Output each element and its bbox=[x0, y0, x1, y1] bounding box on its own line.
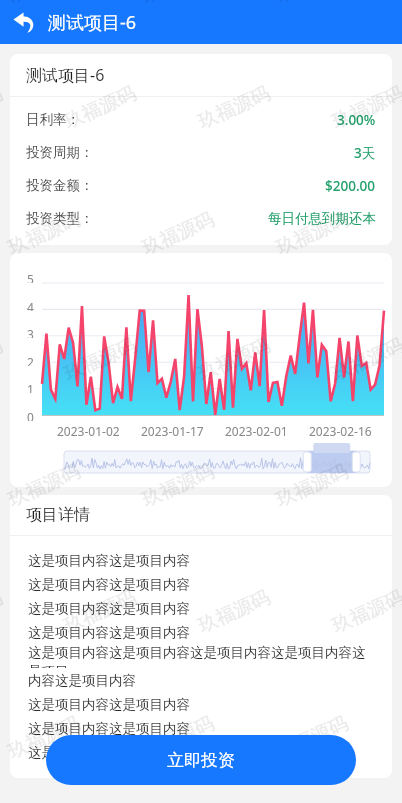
staticText: 测试项目-6 bbox=[48, 10, 137, 35]
staticText: 玖福源码 bbox=[328, 82, 402, 134]
staticText: 玖福源码 bbox=[328, 334, 402, 386]
staticText: 玖福源码 bbox=[60, 82, 140, 134]
staticText: 3.00% bbox=[337, 111, 376, 129]
staticText: 玖福源码 bbox=[194, 334, 274, 386]
staticText: 5 bbox=[27, 271, 34, 283]
staticText: 2 bbox=[27, 354, 34, 366]
staticText: 1 bbox=[27, 381, 34, 393]
staticText: 玖福源码 bbox=[0, 82, 6, 134]
staticText: 这是项目内容这是项目内容 bbox=[28, 720, 190, 737]
staticText: 日利率： bbox=[26, 111, 80, 128]
staticText: 玖福源码 bbox=[0, 586, 6, 638]
staticText: 玖福源码 bbox=[0, 334, 6, 386]
staticText: 4 bbox=[27, 299, 34, 311]
staticText: 2023-01-17 bbox=[141, 423, 204, 439]
staticText: 玖福源码 bbox=[272, 712, 352, 764]
staticText: 这是项目内容这是项目内容 bbox=[28, 696, 190, 713]
staticText: 这是项目内容这是项目内容 bbox=[28, 600, 190, 617]
staticText: 玖福源码 bbox=[138, 208, 218, 260]
button[interactable]: 日利率： bbox=[26, 103, 376, 136]
button[interactable]: 投资类型： bbox=[26, 202, 376, 235]
staticText: 玖福源码 bbox=[272, 208, 352, 260]
staticText: 玖福源码 bbox=[194, 82, 274, 134]
staticText: 这是项目内容这是项目内容 bbox=[28, 552, 190, 569]
staticText: 3 bbox=[27, 326, 34, 338]
staticText: 3天 bbox=[354, 144, 376, 162]
staticText: 玖福源码 bbox=[328, 586, 402, 638]
button[interactable]: Chart range slider bbox=[64, 449, 370, 475]
staticText: 测试项目-6 bbox=[26, 64, 105, 86]
staticText: 玖福源码 bbox=[4, 712, 84, 764]
staticText: 这是项目内容这是项目内容 bbox=[28, 624, 190, 641]
staticText: 玖福源码 bbox=[60, 334, 140, 386]
staticText: 这是项目内容这是项目内容 bbox=[28, 576, 190, 593]
staticText: 玖福源码 bbox=[138, 460, 218, 512]
staticText: 内容这是项目内容 bbox=[28, 672, 136, 689]
staticText: 玖福源码 bbox=[138, 712, 218, 764]
button[interactable]: 立即投资 bbox=[46, 735, 356, 785]
staticText: 玖福源码 bbox=[4, 208, 84, 260]
staticText: 项目详情 bbox=[26, 505, 90, 525]
staticText: 投资类型： bbox=[26, 210, 94, 227]
staticText: 立即投资 bbox=[167, 750, 235, 771]
staticText: 投资周期： bbox=[26, 144, 94, 161]
staticText: 0 bbox=[27, 409, 34, 421]
staticText: 2023-02-16 bbox=[309, 423, 372, 439]
staticText: 2023-02-01 bbox=[225, 423, 288, 439]
button[interactable]: Back bbox=[8, 5, 42, 39]
staticText: 每日付息到期还本 bbox=[268, 210, 376, 227]
staticText: 玖福源码 bbox=[194, 586, 274, 638]
staticText: 玖福源码 bbox=[272, 460, 352, 512]
button[interactable]: 投资金额： bbox=[26, 169, 376, 202]
staticText: 这是项目内容这是项目内容 bbox=[28, 744, 190, 761]
staticText: 投资金额： bbox=[26, 177, 94, 194]
button[interactable]: 投资周期： bbox=[26, 136, 376, 169]
staticText: 2023-01-02 bbox=[57, 423, 120, 439]
staticText: $200.00 bbox=[325, 177, 376, 195]
staticText: 玖福源码 bbox=[4, 460, 84, 512]
staticText: 玖福源码 bbox=[60, 586, 140, 638]
staticText: 这是项目内容这是项目内容这是项目内容这是项目内容这是项目 bbox=[28, 644, 378, 668]
